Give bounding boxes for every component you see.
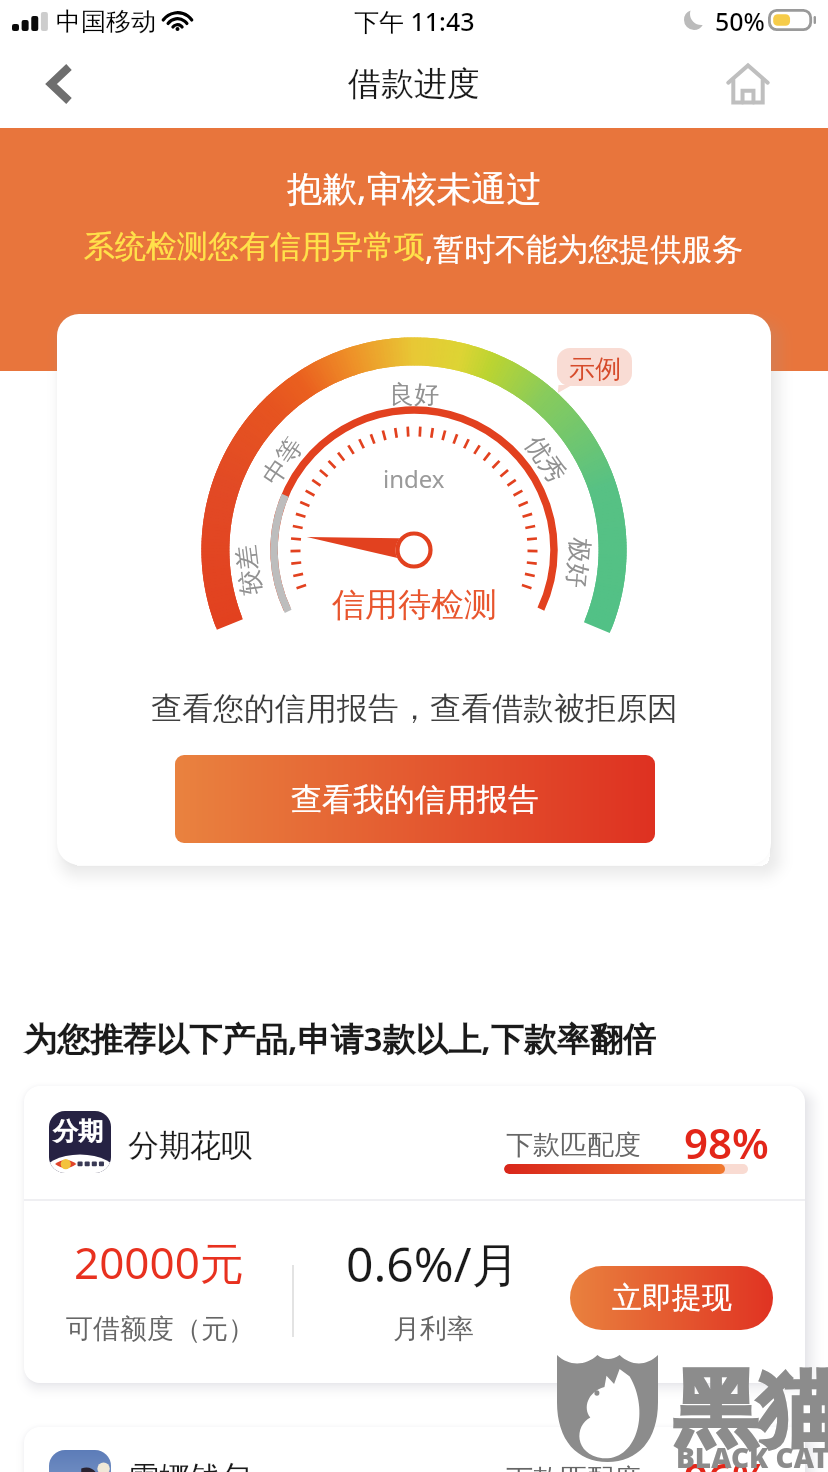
staticText: 下午 11:43: [354, 4, 475, 38]
staticText: 良好: [389, 379, 439, 410]
staticText: 为您推荐以下产品,申请3款以上,下款率翻倍: [24, 1016, 656, 1061]
staticText: 96%: [684, 1449, 769, 1472]
staticText: 中等: [256, 432, 309, 491]
staticText: ,暂时不能为您提供服务: [425, 227, 744, 269]
staticText: BLACK CAT: [676, 1438, 828, 1472]
staticText: 系统检测您有信用异常项: [84, 227, 425, 266]
staticText: 雪娜钱包: [128, 1458, 252, 1472]
staticText: 黑猫: [673, 1357, 828, 1463]
staticText: 0.6%/月: [346, 1231, 520, 1297]
staticText: 示例: [569, 353, 621, 386]
staticText: 20000元: [74, 1232, 244, 1292]
staticText: index: [383, 462, 445, 495]
staticText: 查看您的信用报告，查看借款被拒原因: [151, 689, 678, 728]
staticText: 信用待检测: [332, 584, 497, 626]
staticText: 极好: [561, 537, 596, 589]
staticText: 中国移动: [56, 6, 156, 37]
staticText: 立即提现: [612, 1279, 732, 1317]
staticText: 98%: [684, 1114, 769, 1171]
staticText: 优秀: [519, 430, 573, 489]
staticText: 月利率: [393, 1312, 474, 1346]
button[interactable]: 查看我的信用报告: [175, 755, 655, 843]
button[interactable]: Back: [28, 52, 92, 116]
button[interactable]: Home: [716, 52, 780, 116]
button[interactable]: 立即提现: [570, 1266, 773, 1330]
staticText: 分期: [53, 1116, 103, 1147]
staticText: 较差: [230, 543, 267, 597]
staticText: 查看我的信用报告: [291, 780, 539, 819]
staticText: 分期花呗: [128, 1126, 252, 1165]
button[interactable]: 分期: [24, 1086, 805, 1383]
staticText: 借款进度: [348, 63, 480, 105]
staticText: 抱歉,审核未通过: [287, 164, 542, 212]
staticText: 下款匹配度: [506, 1462, 641, 1472]
staticText: 下款匹配度: [506, 1128, 641, 1162]
staticText: 可借额度（元）: [66, 1312, 255, 1346]
staticText: 50%: [715, 4, 765, 38]
button[interactable]: 雪娜钱包: [24, 1427, 805, 1472]
